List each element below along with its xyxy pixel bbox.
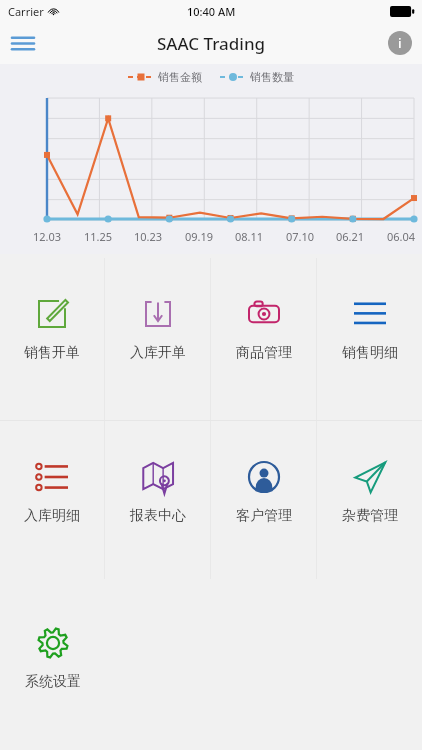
- staticText: 11.25: [84, 229, 113, 244]
- staticText: 10.23: [134, 229, 163, 244]
- staticText: 客户管理: [236, 507, 292, 525]
- staticText: 06.21: [336, 229, 365, 244]
- button[interactable]: 销售开单: [0, 258, 104, 420]
- staticText: 入库明细: [24, 507, 80, 525]
- button[interactable]: Info: [388, 31, 412, 55]
- staticText: 10:40 AM: [187, 4, 236, 19]
- staticText: 报表中心: [130, 507, 186, 525]
- staticText: 杂费管理: [342, 507, 398, 525]
- staticText: 0: [38, 219, 44, 220]
- button[interactable]: 系统设置: [0, 597, 105, 737]
- button[interactable]: 商品管理: [211, 258, 316, 420]
- staticText: Carrier: [8, 4, 44, 19]
- staticText: 08.11: [235, 229, 264, 244]
- staticText: 09.19: [185, 229, 214, 244]
- staticText: 系统设置: [25, 673, 81, 691]
- button[interactable]: 报表中心: [105, 421, 210, 579]
- button[interactable]: 销售明细: [317, 258, 422, 420]
- staticText: 入库开单: [130, 344, 186, 362]
- staticText: 销售数量: [250, 70, 294, 84]
- button[interactable]: 客户管理: [211, 421, 316, 579]
- staticText: i: [398, 34, 402, 52]
- staticText: 销售明细: [342, 344, 398, 362]
- staticText: 销售金额: [158, 70, 202, 84]
- staticText: 06.04: [387, 229, 416, 244]
- button[interactable]: 入库开单: [105, 258, 210, 420]
- staticText: 12.03: [33, 229, 62, 244]
- staticText: 07.10: [286, 229, 315, 244]
- staticText: 销售开单: [24, 344, 80, 362]
- staticText: SAAC Trading: [157, 32, 266, 55]
- button[interactable]: 杂费管理: [317, 421, 422, 579]
- button[interactable]: 入库明细: [0, 421, 104, 579]
- staticText: 商品管理: [236, 344, 292, 362]
- button[interactable]: Menu: [0, 22, 46, 64]
